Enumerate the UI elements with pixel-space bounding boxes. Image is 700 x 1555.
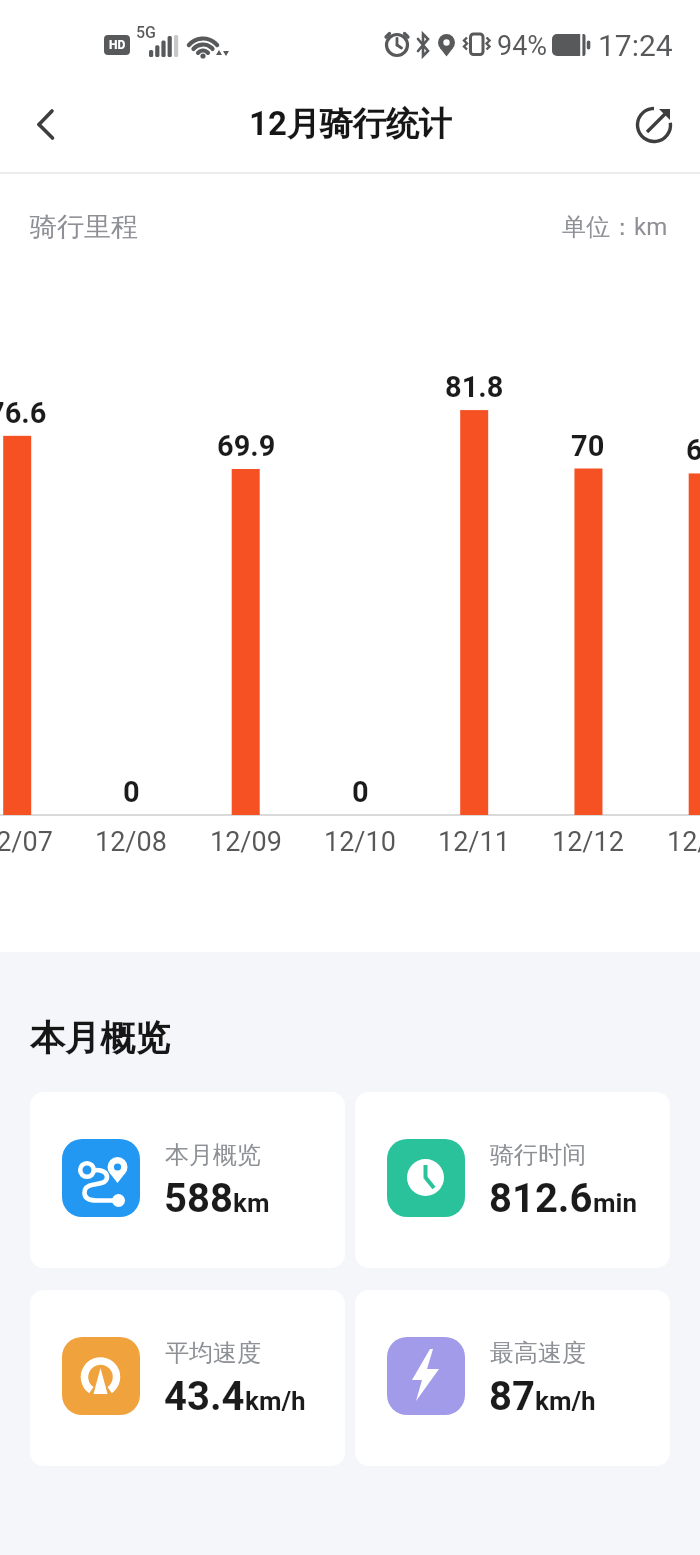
staticText: 骑行时间: [490, 1140, 586, 1170]
button[interactable]: 平均速度: [30, 1290, 345, 1466]
button[interactable]: [20, 98, 72, 150]
staticText: 70: [571, 429, 605, 463]
staticText: 69: [686, 433, 700, 467]
staticText: 69.9: [217, 429, 276, 463]
staticText: HD: [109, 38, 126, 52]
staticText: 12/09: [210, 826, 282, 858]
staticText: 12月骑行统计: [249, 103, 452, 145]
staticText: 12/10: [324, 826, 396, 858]
staticText: 最高速度: [490, 1338, 586, 1368]
staticText: 5G: [136, 23, 156, 42]
staticText: km/h: [535, 1386, 596, 1416]
button[interactable]: 骑行时间: [355, 1092, 670, 1268]
staticText: 812.6: [489, 1175, 593, 1222]
staticText: 12/07: [0, 826, 53, 858]
staticText: 94%: [497, 30, 548, 62]
staticText: 76.6: [0, 396, 47, 430]
staticText: 87: [489, 1373, 535, 1420]
staticText: 单位：km: [562, 212, 668, 242]
button[interactable]: [628, 98, 680, 150]
staticText: 588: [164, 1175, 233, 1222]
staticText: 12/11: [438, 826, 510, 858]
staticText: min: [593, 1188, 637, 1218]
button[interactable]: 本月概览: [30, 1092, 345, 1268]
staticText: 0: [123, 775, 140, 809]
staticText: 本月概览: [165, 1140, 261, 1170]
staticText: 12/12: [552, 826, 624, 858]
staticText: 骑行里程: [30, 210, 138, 244]
staticText: 平均速度: [165, 1338, 261, 1368]
staticText: 本月概览: [30, 1016, 170, 1060]
staticText: 0: [352, 775, 369, 809]
staticText: 43.4: [164, 1373, 245, 1420]
staticText: 12/13: [667, 826, 700, 858]
staticText: km: [233, 1188, 270, 1218]
staticText: 12/08: [95, 826, 167, 858]
button[interactable]: 最高速度: [355, 1290, 670, 1466]
staticText: 81.8: [445, 370, 504, 404]
staticText: 17:24: [598, 28, 673, 63]
staticText: km/h: [245, 1386, 306, 1416]
